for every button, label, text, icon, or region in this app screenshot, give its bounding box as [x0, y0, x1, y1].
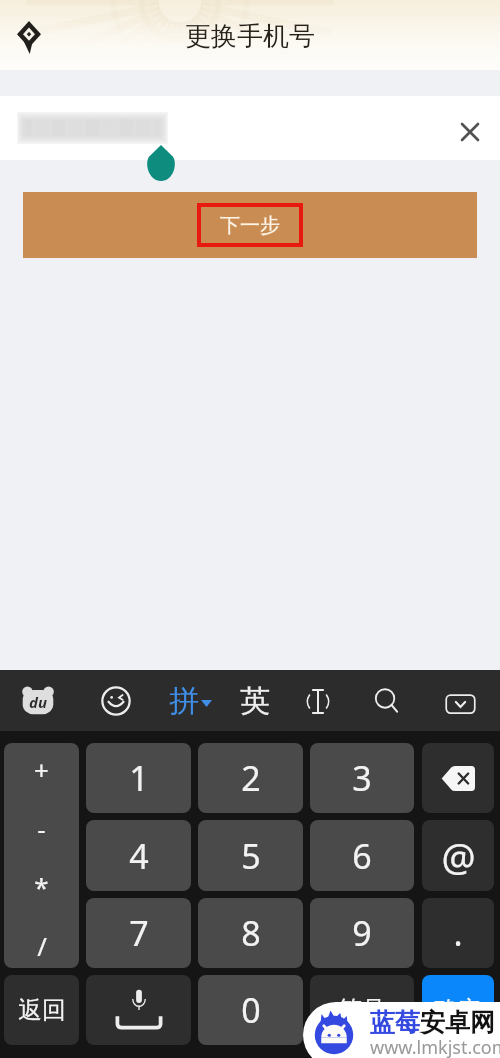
button[interactable]: 3 [310, 743, 414, 813]
staticText: 6 [352, 833, 372, 879]
staticText: / [37, 928, 47, 963]
staticText: 拼 [169, 682, 199, 720]
staticText: + [34, 752, 49, 787]
staticText: 符号 [338, 995, 386, 1025]
button[interactable]: Search [357, 671, 417, 731]
button[interactable]: 英 [225, 671, 285, 731]
button[interactable]: 9 [310, 898, 414, 968]
button[interactable]: @ [422, 820, 494, 891]
staticText: * [34, 869, 49, 904]
staticText: 返回 [18, 995, 66, 1025]
staticText: @ [441, 830, 476, 882]
staticText: 英 [240, 682, 270, 720]
button[interactable]: 下一步 [23, 192, 477, 258]
button[interactable]: . [422, 898, 494, 968]
staticText: www.lmkjst.com [370, 1035, 500, 1058]
staticText: 下一步 [220, 213, 280, 238]
button[interactable]: 1 [86, 743, 191, 813]
button[interactable]: 5 [198, 820, 303, 891]
staticText: 蓝莓安卓网 [370, 1007, 495, 1038]
staticText: 4 [129, 833, 149, 879]
button[interactable]: 返回 [4, 975, 79, 1045]
staticText: 8 [241, 910, 261, 956]
button[interactable]: 7 [86, 898, 191, 968]
staticText: 7 [129, 910, 149, 956]
button[interactable]: 2 [198, 743, 303, 813]
button[interactable]: Backspace [422, 743, 494, 813]
button[interactable]: Back [6, 14, 52, 60]
staticText: 5 [241, 833, 261, 879]
button[interactable]: Clear [449, 111, 491, 153]
button[interactable]: Voice input [86, 975, 191, 1045]
button[interactable]: 0 [198, 975, 303, 1045]
button[interactable]: Hide keyboard [430, 671, 490, 731]
button[interactable]: Baidu input [8, 670, 68, 730]
staticText: 0 [241, 987, 261, 1033]
staticText: 9 [352, 910, 372, 956]
staticText: 3 [352, 755, 372, 801]
staticText: du [29, 692, 47, 712]
button[interactable]: 拼 [160, 671, 220, 731]
staticText: 1 [129, 755, 149, 801]
staticText: . [453, 910, 463, 956]
staticText: 2 [241, 755, 261, 801]
staticText: 确定 [434, 995, 482, 1025]
button[interactable]: 4 [86, 820, 191, 891]
button[interactable]: 符号 [310, 975, 414, 1045]
button[interactable]: Emoji [86, 671, 146, 731]
button[interactable]: 8 [198, 898, 303, 968]
button[interactable]: Move cursor [288, 671, 348, 731]
staticText: 更换手机号 [185, 20, 315, 53]
staticText: - [37, 811, 46, 846]
button[interactable]: + [4, 743, 79, 968]
button[interactable]: 确定 [422, 975, 494, 1045]
button[interactable]: 6 [310, 820, 414, 891]
